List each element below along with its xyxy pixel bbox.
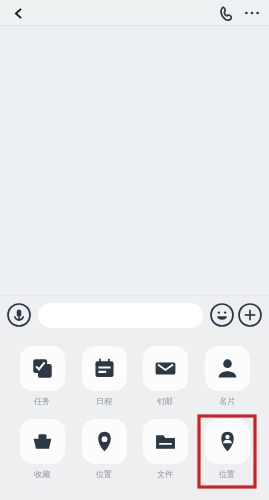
button[interactable]: 位置 xyxy=(199,419,255,479)
staticText: 日程 xyxy=(96,396,112,406)
staticText: 文件 xyxy=(157,469,173,479)
button[interactable]: Back xyxy=(6,1,30,25)
button[interactable]: 文件 xyxy=(137,419,193,479)
button[interactable]: More xyxy=(238,303,262,327)
button[interactable]: Voice message xyxy=(7,303,31,327)
button[interactable]: 名片 xyxy=(199,346,255,406)
button[interactable]: 任务 xyxy=(14,346,70,406)
button[interactable]: Call xyxy=(213,1,237,25)
button[interactable] xyxy=(38,303,203,328)
staticText: 名片 xyxy=(219,396,235,406)
staticText: 位置 xyxy=(219,469,235,479)
staticText: 任务 xyxy=(34,396,50,406)
button[interactable]: More options xyxy=(240,1,264,25)
button[interactable]: 日程 xyxy=(76,346,132,406)
staticText: 收藏 xyxy=(34,469,50,479)
button[interactable]: 收藏 xyxy=(14,419,70,479)
button[interactable]: 位置 xyxy=(76,419,132,479)
staticText: 钉邮 xyxy=(157,396,173,406)
button[interactable]: Emoji xyxy=(210,303,234,327)
button[interactable]: 钉邮 xyxy=(137,346,193,406)
staticText: 位置 xyxy=(96,469,112,479)
